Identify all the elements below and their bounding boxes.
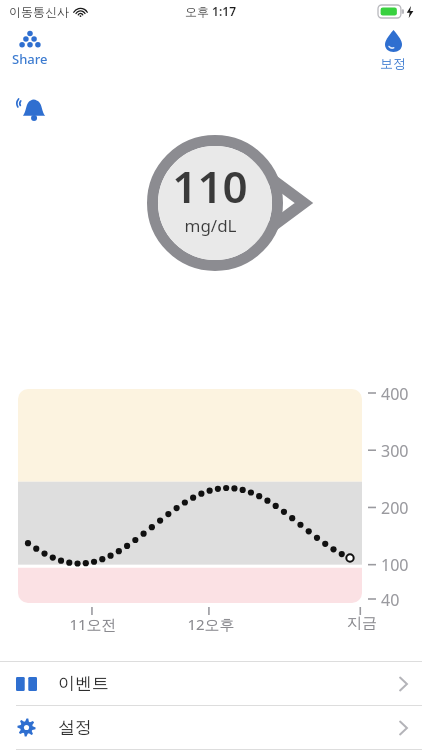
staticText: 100 — [381, 554, 409, 574]
staticText: 이동통신사 — [9, 4, 69, 19]
staticText: 설정 — [58, 717, 92, 738]
staticText: 보정 — [380, 55, 406, 71]
staticText: 110 — [172, 156, 248, 216]
staticText: Share — [12, 50, 48, 68]
button[interactable]: 110 — [140, 133, 310, 273]
staticText: 이벤트 — [58, 673, 109, 694]
staticText: 지금 — [347, 614, 377, 633]
staticText: 40 — [381, 589, 400, 609]
button[interactable]: 설정 — [0, 706, 422, 749]
staticText: mg/dL — [184, 214, 237, 237]
staticText: 오후 1:17 — [185, 3, 237, 19]
button[interactable]: 보정 — [372, 28, 414, 73]
button[interactable]: 이벤트 — [0, 662, 422, 705]
staticText: 12오후 — [187, 614, 235, 634]
button[interactable]: Share — [8, 28, 52, 70]
staticText: 200 — [381, 497, 409, 517]
staticText: 400 — [381, 383, 409, 403]
staticText: 300 — [381, 440, 409, 460]
button[interactable]: Alerts — [10, 94, 50, 124]
staticText: 11오전 — [69, 614, 117, 634]
